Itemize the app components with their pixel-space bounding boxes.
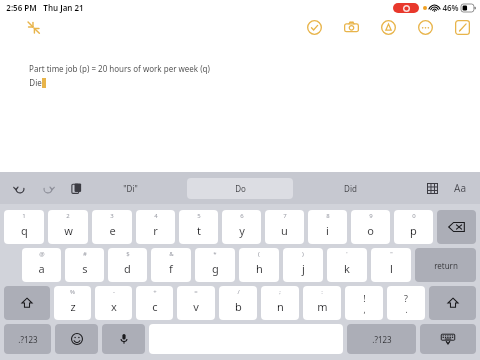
button[interactable]: = xyxy=(177,286,215,320)
staticText: q xyxy=(21,223,28,238)
button[interactable]: 1 xyxy=(4,210,44,244)
button[interactable]: 4 xyxy=(136,210,175,244)
staticText: r xyxy=(153,223,158,238)
button[interactable]: " xyxy=(371,248,411,282)
staticText: 7 xyxy=(283,212,287,220)
button[interactable]: ; xyxy=(261,286,299,320)
button[interactable]: Do xyxy=(187,178,293,199)
button[interactable]: Camera xyxy=(341,17,361,37)
staticText: k xyxy=(344,261,350,276)
button[interactable]: Annotate xyxy=(378,17,398,37)
staticText: # xyxy=(83,250,87,258)
button[interactable]: * xyxy=(195,248,235,282)
staticText: + xyxy=(153,288,157,296)
button[interactable]: "Di" xyxy=(77,178,183,199)
staticText: m xyxy=(317,299,328,314)
button[interactable]: Undo xyxy=(10,178,30,198)
button[interactable]: More xyxy=(415,17,435,37)
button[interactable]: 0 xyxy=(394,210,433,244)
staticText: 2 xyxy=(66,212,70,220)
staticText: % xyxy=(70,288,75,296)
staticText: 46% xyxy=(442,2,459,13)
button[interactable]: Paste xyxy=(66,178,86,198)
button[interactable]: Emoji xyxy=(55,324,98,354)
staticText: l xyxy=(390,261,393,276)
staticText: ' xyxy=(346,250,348,258)
button[interactable]: Dictate xyxy=(102,324,145,354)
staticText: Do xyxy=(235,183,246,194)
staticText: o xyxy=(367,223,374,238)
staticText: s xyxy=(82,261,88,276)
staticText: " xyxy=(390,250,393,258)
staticText: d xyxy=(124,261,131,276)
staticText: $ xyxy=(126,250,130,258)
button[interactable]: Mark complete xyxy=(304,17,324,37)
button[interactable]: ' xyxy=(327,248,367,282)
button[interactable]: Redo xyxy=(38,178,58,198)
staticText: b xyxy=(235,299,242,314)
staticText: = xyxy=(194,288,198,296)
button[interactable]: ? xyxy=(387,286,425,320)
staticText: ! xyxy=(363,292,366,304)
button[interactable]: .?123 xyxy=(4,324,51,354)
staticText: ? xyxy=(404,292,408,304)
button[interactable]: 2 xyxy=(48,210,88,244)
button[interactable]: Insert table xyxy=(422,178,442,198)
staticText: t xyxy=(197,223,201,238)
button[interactable]: 9 xyxy=(351,210,390,244)
button[interactable]: $ xyxy=(108,248,147,282)
staticText: w xyxy=(64,223,73,238)
staticText: x xyxy=(111,299,117,314)
staticText: 1 xyxy=(22,212,26,220)
staticText: Aa xyxy=(454,181,466,195)
staticText: * xyxy=(213,250,217,258)
button[interactable]: 6 xyxy=(222,210,261,244)
staticText: return xyxy=(434,260,458,271)
staticText: .?123 xyxy=(18,334,38,345)
button[interactable]: 8 xyxy=(308,210,347,244)
button[interactable]: Backspace xyxy=(437,210,476,244)
staticText: n xyxy=(277,299,284,314)
staticText: .?123 xyxy=(372,334,392,345)
button[interactable]: : xyxy=(303,286,341,320)
staticText: / xyxy=(237,288,240,296)
button[interactable]: 5 xyxy=(179,210,218,244)
button[interactable]: Shift xyxy=(429,286,476,320)
button[interactable]: Text format xyxy=(450,178,470,198)
staticText: ; xyxy=(279,288,281,296)
button[interactable]: + xyxy=(136,286,173,320)
button[interactable]: 3 xyxy=(92,210,132,244)
staticText: 9 xyxy=(369,212,373,220)
button[interactable]: & xyxy=(151,248,191,282)
button[interactable]: ( xyxy=(239,248,279,282)
staticText: 5 xyxy=(197,212,201,220)
staticText: : xyxy=(321,288,323,296)
button[interactable]: % xyxy=(54,286,91,320)
staticText: Die xyxy=(29,77,42,88)
button[interactable]: Collapse xyxy=(22,16,44,38)
button[interactable]: ) xyxy=(283,248,323,282)
staticText: h xyxy=(256,261,263,276)
button[interactable]: Compose xyxy=(452,17,472,37)
button[interactable]: 7 xyxy=(265,210,304,244)
staticText: a xyxy=(38,261,45,276)
button[interactable]: Shift xyxy=(4,286,50,320)
button[interactable]: @ xyxy=(22,248,61,282)
staticText: ) xyxy=(302,250,304,258)
staticText: v xyxy=(193,299,199,314)
button[interactable]: .?123 xyxy=(347,324,416,354)
staticText: . xyxy=(405,304,408,315)
button[interactable]: Did xyxy=(297,178,403,199)
button[interactable]: Hide keyboard xyxy=(420,324,476,354)
staticText: j xyxy=(302,261,305,276)
button[interactable]: / xyxy=(219,286,257,320)
button[interactable]: ! xyxy=(345,286,383,320)
button[interactable]: - xyxy=(95,286,132,320)
staticText: p xyxy=(410,223,417,238)
staticText: c xyxy=(152,299,158,314)
staticText: 3 xyxy=(110,212,114,220)
button[interactable]: return xyxy=(415,248,476,282)
staticText: e xyxy=(109,223,116,238)
button[interactable]: # xyxy=(65,248,104,282)
